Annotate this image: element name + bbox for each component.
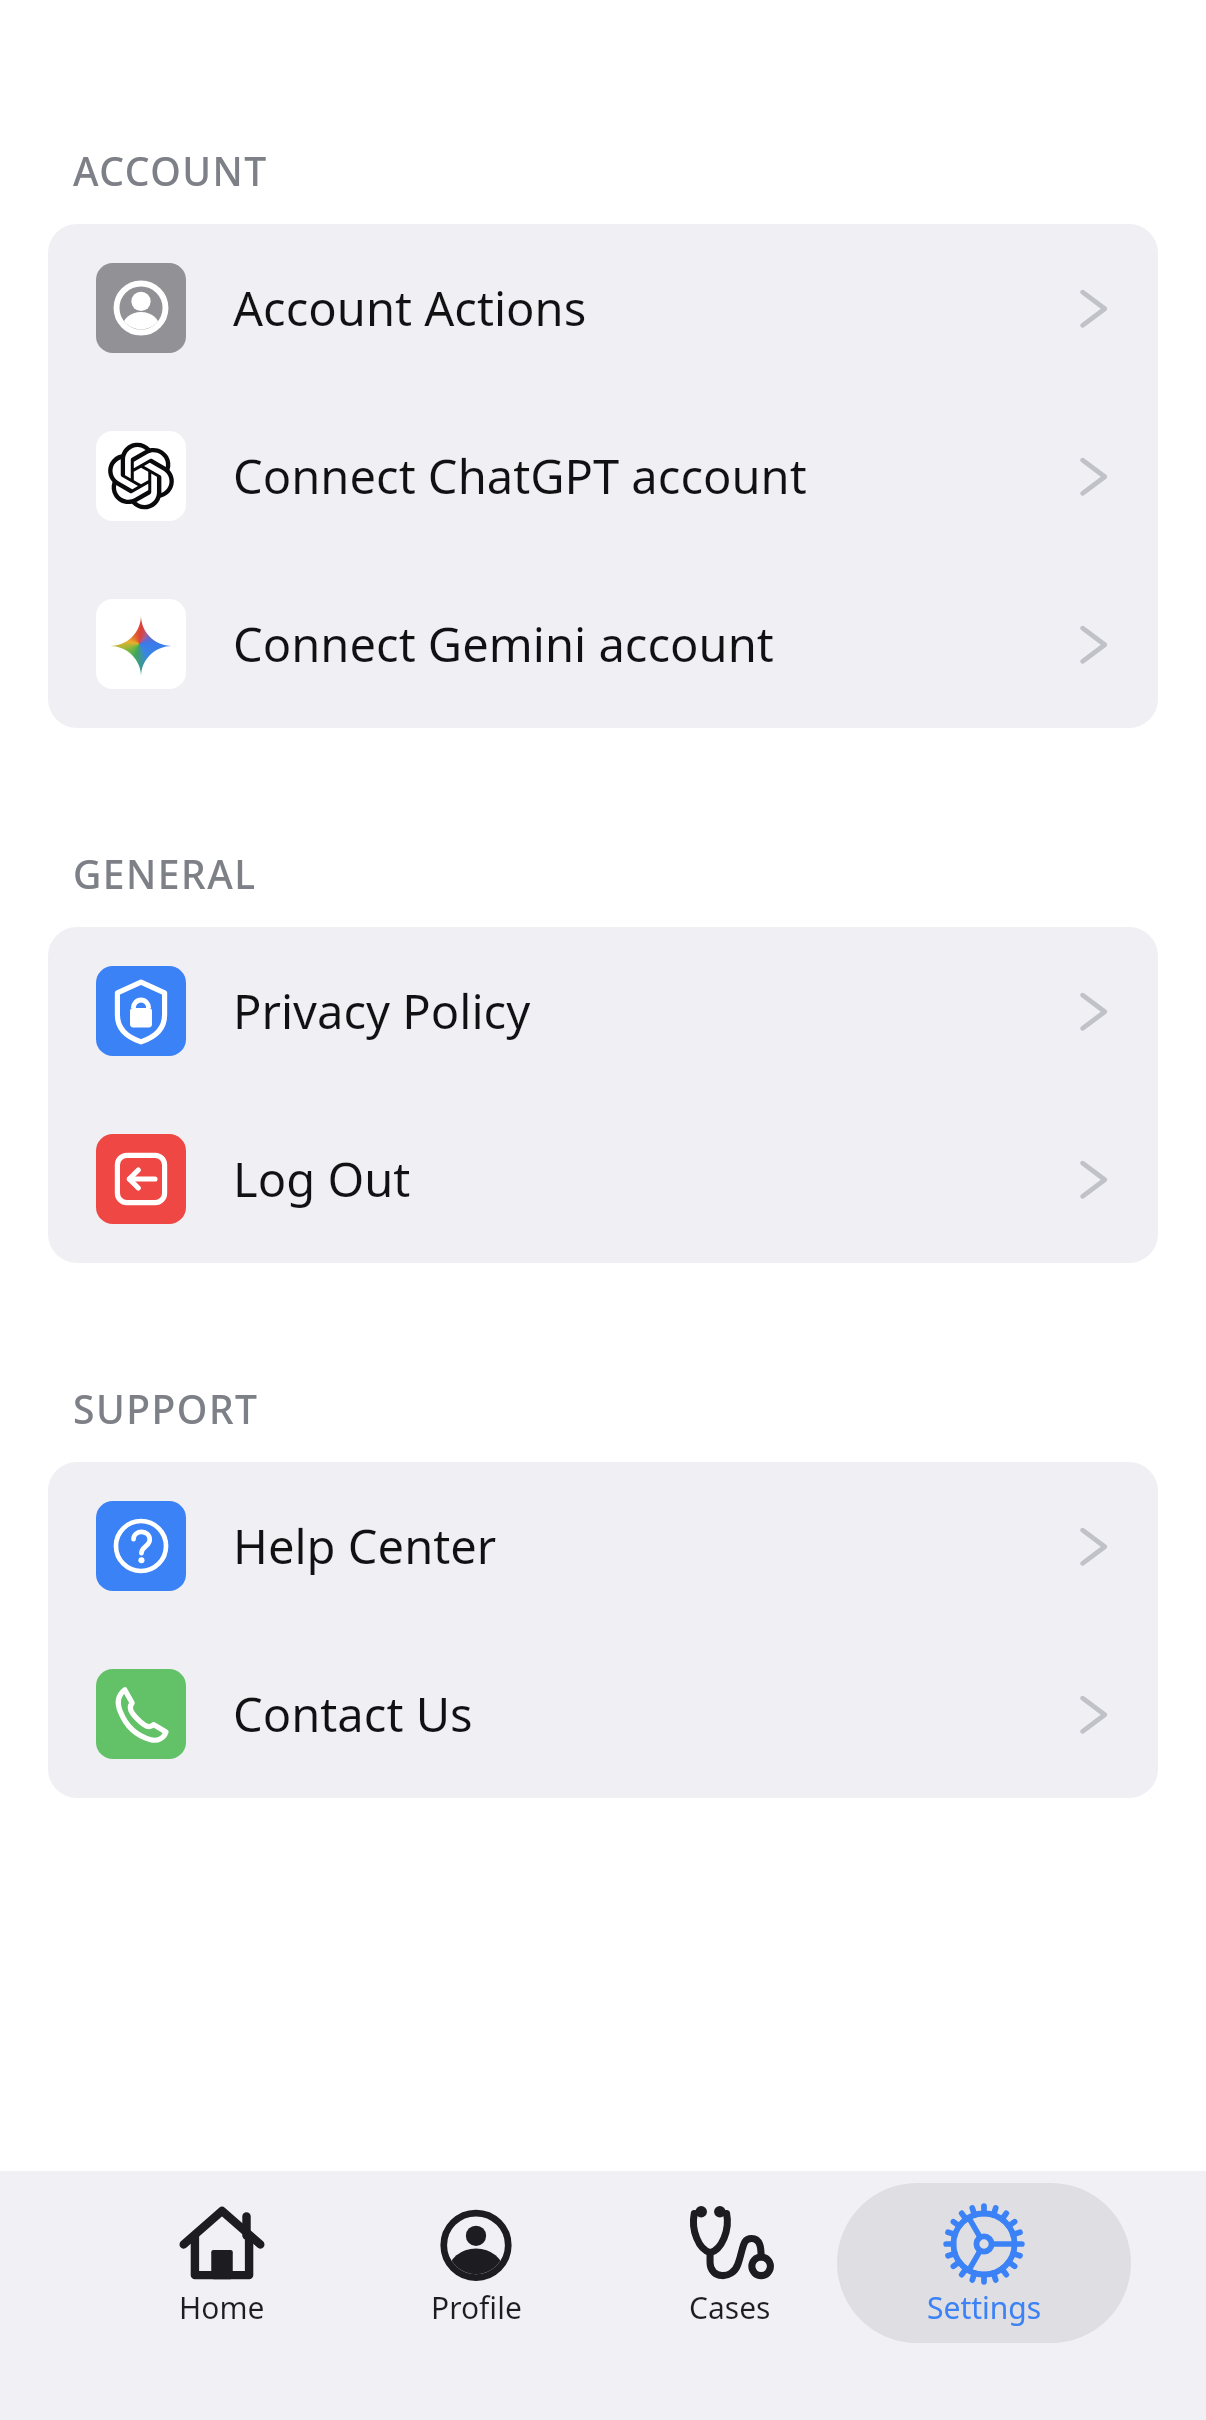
staticText: Profile — [431, 2287, 522, 2328]
staticText: Log Out — [233, 1147, 411, 1211]
staticText: Account Actions — [233, 276, 587, 340]
button[interactable]: Account actions — [48, 224, 1158, 392]
other: Cases — [687, 2201, 773, 2287]
button[interactable]: Help — [48, 1462, 1158, 1630]
staticText: Connect ChatGPT account — [233, 444, 807, 508]
button[interactable]: Home — [75, 2183, 369, 2343]
staticText: Cases — [689, 2287, 771, 2328]
button[interactable]: Gemini — [48, 560, 1158, 728]
staticText: ACCOUNT — [73, 144, 268, 197]
button[interactable]: ChatGPT — [48, 392, 1158, 560]
other: Profile — [433, 2201, 519, 2287]
other: Account actions — [96, 263, 186, 353]
other: Settings — [941, 2201, 1027, 2287]
other: ChatGPT — [96, 431, 186, 521]
button[interactable]: Cases — [583, 2183, 877, 2343]
button[interactable]: Privacy — [48, 927, 1158, 1095]
button[interactable]: Phone — [48, 1630, 1158, 1798]
button[interactable]: Log out — [48, 1095, 1158, 1263]
staticText: Settings — [927, 2287, 1042, 2328]
other: Privacy — [96, 966, 186, 1056]
staticText: Home — [179, 2287, 265, 2328]
button[interactable]: Profile — [329, 2183, 623, 2343]
staticText: Contact Us — [233, 1682, 473, 1746]
other: Log out — [96, 1134, 186, 1224]
staticText: SUPPORT — [73, 1382, 259, 1435]
button[interactable]: Settings — [837, 2183, 1131, 2343]
staticText: Connect Gemini account — [233, 612, 774, 676]
other: Home — [179, 2201, 265, 2287]
other: Phone — [96, 1669, 186, 1759]
other: Gemini — [96, 599, 186, 689]
staticText: GENERAL — [73, 847, 257, 900]
other: Help — [96, 1501, 186, 1591]
staticText: Privacy Policy — [233, 979, 531, 1043]
staticText: Help Center — [233, 1514, 497, 1578]
